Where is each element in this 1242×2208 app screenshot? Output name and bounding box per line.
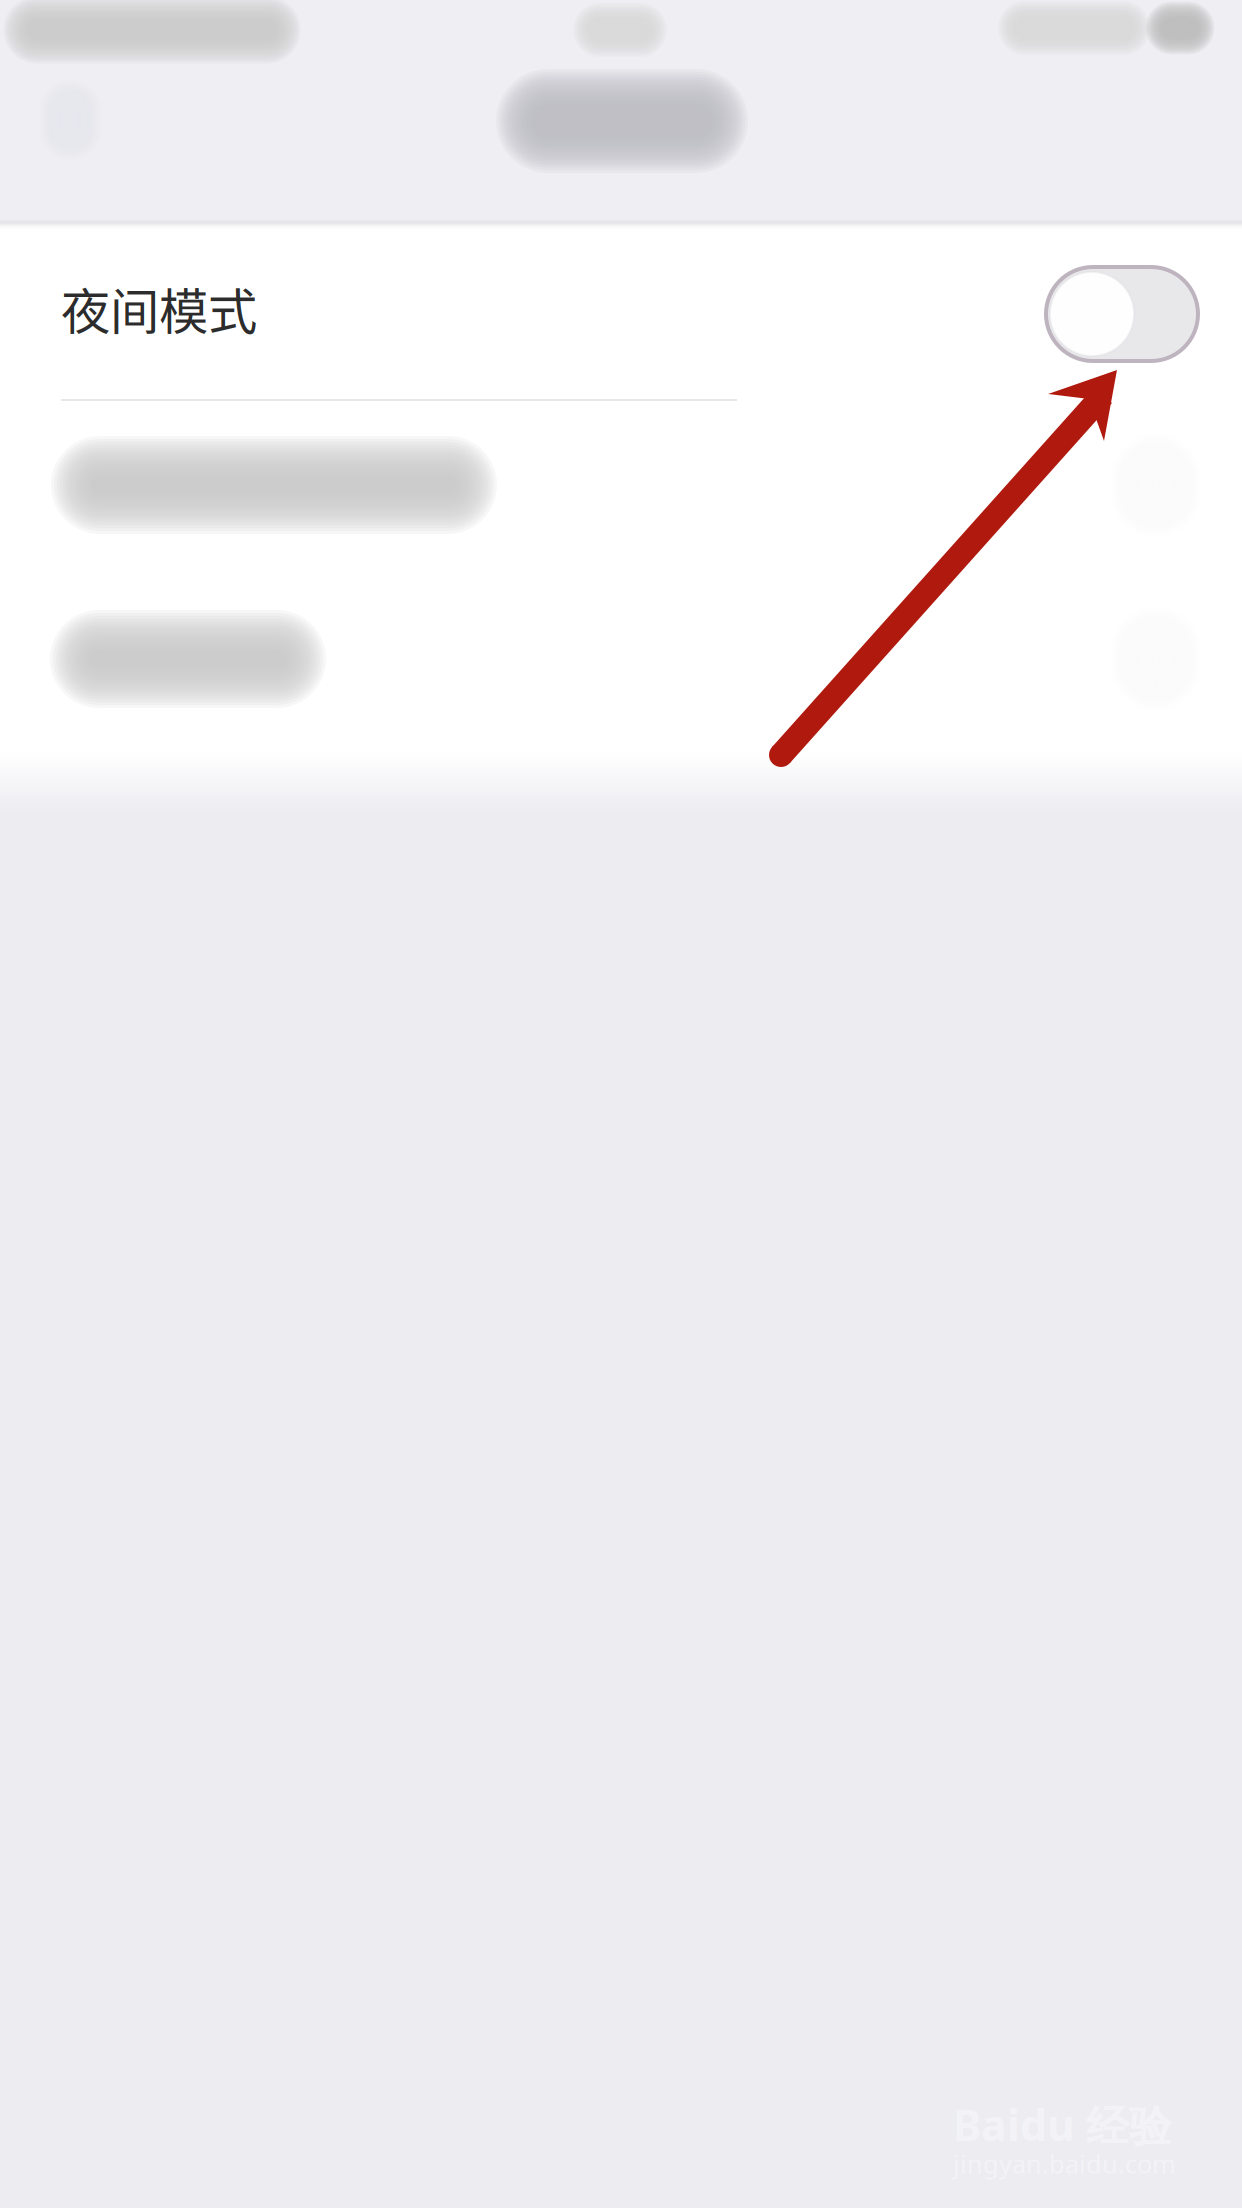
staticText: 夜间模式 (61, 272, 257, 344)
button[interactable]: 夜间模式 (0, 229, 1242, 399)
button[interactable] (0, 401, 1242, 581)
button[interactable] (0, 581, 1242, 761)
staticText: Baidu 经验 (953, 2096, 1172, 2153)
